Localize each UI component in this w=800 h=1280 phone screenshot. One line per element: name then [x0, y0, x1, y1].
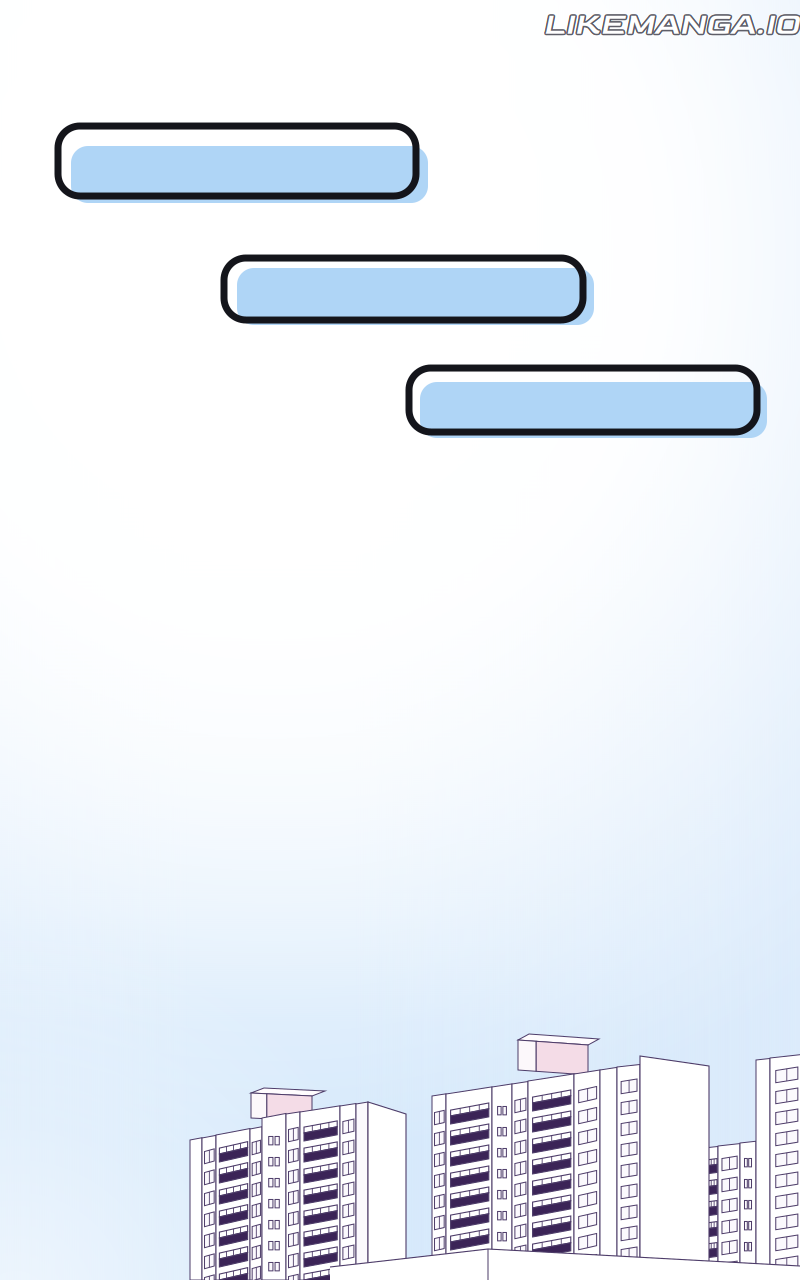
- staticText: LIKEMANGA.IO: [544, 4, 800, 42]
- staticText: LIKEMANGA.IO: [544, 6, 800, 44]
- staticText: LIKEMANGA.IO: [542, 6, 799, 45]
- staticText: LIKEMANGA.IO: [543, 5, 800, 43]
- staticText: LIKEMANGA.IO: [542, 6, 799, 44]
- staticText: LIKEMANGA.IO: [542, 4, 799, 42]
- staticText: LIKEMANGA.IO: [543, 4, 800, 42]
- staticText: LIKEMANGA.IO: [542, 4, 799, 43]
- staticText: LIKEMANGA.IO: [542, 5, 799, 43]
- staticText: LIKEMANGA.IO: [544, 5, 800, 43]
- staticText: LIKEMANGA.IO: [544, 6, 800, 45]
- staticText: LIKEMANGA.IO: [544, 4, 800, 43]
- staticText: LIKEMANGA.IO: [543, 6, 800, 45]
